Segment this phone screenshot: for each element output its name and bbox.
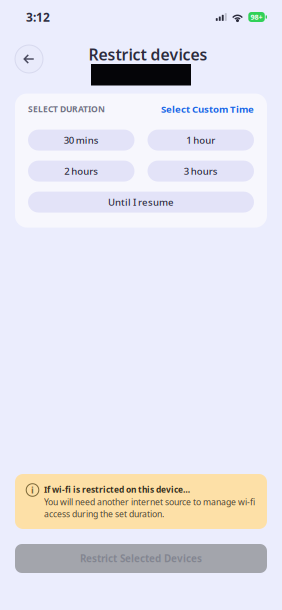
- staticText: access during the set duration.: [44, 508, 164, 520]
- button[interactable]: 1 hour: [147, 130, 254, 151]
- staticText: Restrict Selected Devices: [80, 552, 202, 565]
- staticText: i: [31, 484, 34, 496]
- staticText: 3:12: [26, 9, 50, 25]
- button[interactable]: Restrict Selected Devices: [15, 544, 267, 573]
- button[interactable]: 3 hours: [147, 161, 254, 182]
- button[interactable]: Back: [15, 45, 43, 73]
- staticText: Restrict devices: [88, 44, 207, 65]
- button[interactable]: 2 hours: [28, 161, 134, 182]
- button[interactable]: Until I resume: [28, 192, 254, 213]
- staticText: If wi-fi is restricted on this device…: [44, 484, 190, 495]
- staticText: 2 hours: [64, 164, 98, 178]
- staticText: 1 hour: [186, 133, 215, 147]
- staticText: Until I resume: [108, 195, 174, 209]
- staticText: You will need another internet source to…: [44, 496, 255, 508]
- button[interactable]: Select Custom Time: [161, 102, 254, 116]
- button[interactable]: 30 mins: [28, 130, 134, 151]
- staticText: 3 hours: [184, 164, 218, 178]
- staticText: SELECT DURATION: [28, 103, 105, 115]
- staticText: 98+: [251, 12, 263, 22]
- staticText: Select Custom Time: [161, 102, 254, 116]
- staticText: 30 mins: [64, 133, 99, 147]
